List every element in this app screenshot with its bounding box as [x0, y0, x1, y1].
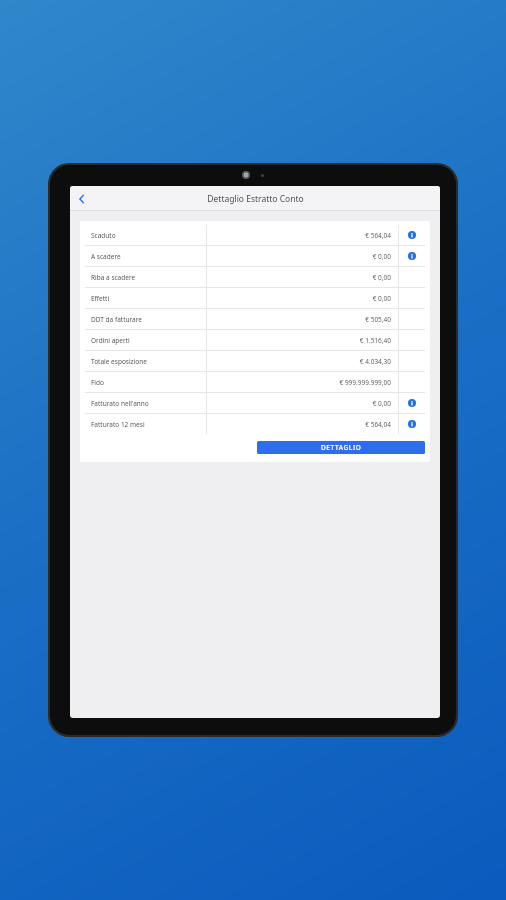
- staticText: DDT da fatturare: [91, 315, 142, 324]
- button[interactable]: Effetti: [85, 288, 425, 308]
- staticText: Riba a scadere: [91, 273, 136, 282]
- staticText: Effetti: [91, 294, 110, 303]
- button[interactable]: Informazioni Scaduto: [403, 226, 421, 244]
- staticText: Dettaglio Estratto Conto: [207, 193, 304, 205]
- staticText: Scaduto: [91, 231, 116, 240]
- staticText: € 0,00: [372, 399, 391, 408]
- button[interactable]: Ordini aperti: [85, 330, 425, 350]
- staticText: € 0,00: [372, 273, 391, 282]
- staticText: Fatturato nell'anno: [91, 399, 149, 408]
- staticText: € 999.999.999,00: [339, 378, 391, 387]
- staticText: € 1.516,40: [359, 336, 391, 345]
- staticText: € 505,40: [365, 315, 391, 324]
- button[interactable]: A scadere: [85, 246, 425, 266]
- button[interactable]: Riba a scadere: [85, 267, 425, 287]
- staticText: € 564,04: [365, 231, 391, 240]
- staticText: Fido: [91, 378, 104, 387]
- staticText: € 564,04: [365, 420, 391, 429]
- button[interactable]: Informazioni Fatturato 12 mesi: [403, 415, 421, 433]
- staticText: € 0,00: [372, 294, 391, 303]
- button[interactable]: DETTAGLIO: [257, 441, 425, 454]
- staticText: € 4.034,30: [359, 357, 391, 366]
- staticText: DETTAGLIO: [321, 443, 362, 452]
- button[interactable]: Fatturato nell'anno: [85, 393, 425, 413]
- staticText: € 0,00: [372, 252, 391, 261]
- button[interactable]: DDT da fatturare: [85, 309, 425, 329]
- staticText: Fatturato 12 mesi: [91, 420, 145, 429]
- button[interactable]: Indietro: [70, 187, 94, 211]
- button[interactable]: Fido: [85, 372, 425, 392]
- button[interactable]: Scaduto: [85, 225, 425, 245]
- button[interactable]: Totale esposizione: [85, 351, 425, 371]
- button[interactable]: Informazioni Fatturato nell'anno: [403, 394, 421, 412]
- staticText: Ordini aperti: [91, 336, 130, 345]
- button[interactable]: Informazioni A scadere: [403, 247, 421, 265]
- staticText: Totale esposizione: [91, 357, 147, 366]
- staticText: A scadere: [91, 252, 121, 261]
- button[interactable]: Fatturato 12 mesi: [85, 414, 425, 434]
